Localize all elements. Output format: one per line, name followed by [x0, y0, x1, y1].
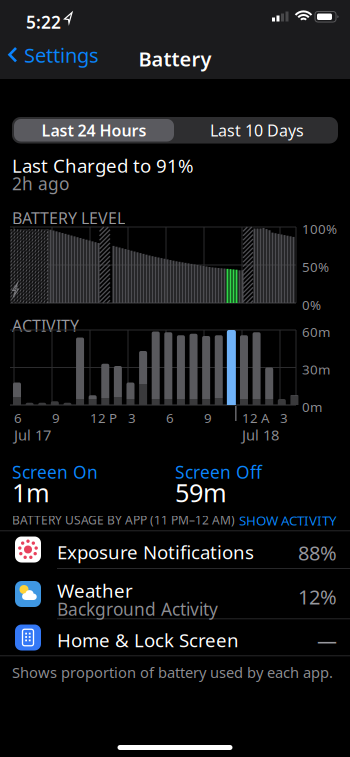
staticText: 60m [302, 323, 330, 341]
staticText: 0% [302, 296, 321, 314]
staticText: Settings [24, 42, 99, 68]
staticText: 88% [298, 539, 337, 566]
staticText: 30m [302, 360, 330, 378]
button[interactable]: Last 24 Hours [13, 117, 175, 143]
staticText: Battery [138, 45, 211, 72]
staticText: 6 [14, 409, 22, 427]
staticText: 59m [175, 475, 227, 509]
staticText: Last 24 Hours [41, 120, 146, 141]
staticText: 5:22 [26, 10, 61, 33]
staticText: 12 P [90, 409, 117, 427]
staticText: BATTERY USAGE BY APP (11 PM–12 AM) [12, 512, 235, 528]
staticText: 9 [52, 409, 60, 427]
staticText: Last 10 Days [210, 120, 304, 141]
staticText: Background Activity [57, 597, 218, 620]
staticText: Home & Lock Screen [57, 627, 239, 652]
staticText: 9 [204, 409, 212, 427]
staticText: 0m [302, 398, 322, 416]
button[interactable]: Last 10 Days [176, 117, 338, 143]
staticText: Jul 18 [242, 425, 279, 444]
staticText: 3 [128, 409, 136, 427]
button[interactable]: Exposure Notifications [0, 531, 350, 568]
staticText: Last Charged to 91% [12, 153, 194, 178]
staticText: 2h ago [12, 172, 69, 195]
staticText: Screen Off [175, 460, 262, 483]
staticText: 12 A [242, 409, 270, 427]
staticText: — [317, 627, 337, 654]
staticText: Screen On [12, 460, 98, 483]
staticText: 12% [298, 583, 337, 610]
staticText: 3 [280, 409, 288, 427]
staticText: SHOW ACTIVITY [239, 511, 337, 529]
button[interactable]: Home & Lock Screen [0, 619, 350, 656]
button[interactable]: Settings [8, 45, 99, 65]
staticText: Weather [57, 578, 133, 603]
staticText: BATTERY LEVEL [12, 207, 125, 229]
staticText: Exposure Notifications [57, 539, 254, 564]
staticText: 1m [12, 475, 50, 509]
staticText: Jul 17 [14, 425, 51, 444]
staticText: ACTIVITY [12, 315, 79, 336]
staticText: 6 [166, 409, 174, 427]
staticText: 100% [302, 220, 337, 238]
staticText: Shows proportion of battery used by each… [12, 662, 333, 682]
button[interactable]: SHOW ACTIVITY [0, 511, 337, 529]
button[interactable]: Weather [0, 568, 350, 619]
staticText: 50% [302, 258, 329, 276]
